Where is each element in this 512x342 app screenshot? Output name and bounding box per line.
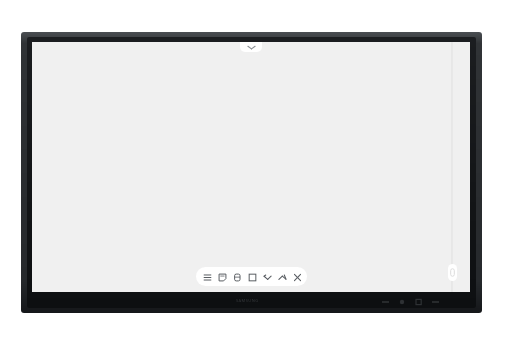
- button[interactable]: Menu: [201, 271, 213, 283]
- staticText: SAMSUNG: [236, 298, 259, 303]
- button[interactable]: New note: [216, 271, 228, 283]
- button[interactable]: Close: [291, 271, 303, 283]
- button[interactable]: Select: [246, 271, 258, 283]
- button[interactable]: Side handle: [448, 264, 457, 281]
- button[interactable]: Undo: [261, 271, 273, 283]
- button[interactable]: Pen: [231, 271, 243, 283]
- button[interactable]: Open menu: [240, 42, 262, 52]
- button[interactable]: Redo: [276, 271, 288, 283]
